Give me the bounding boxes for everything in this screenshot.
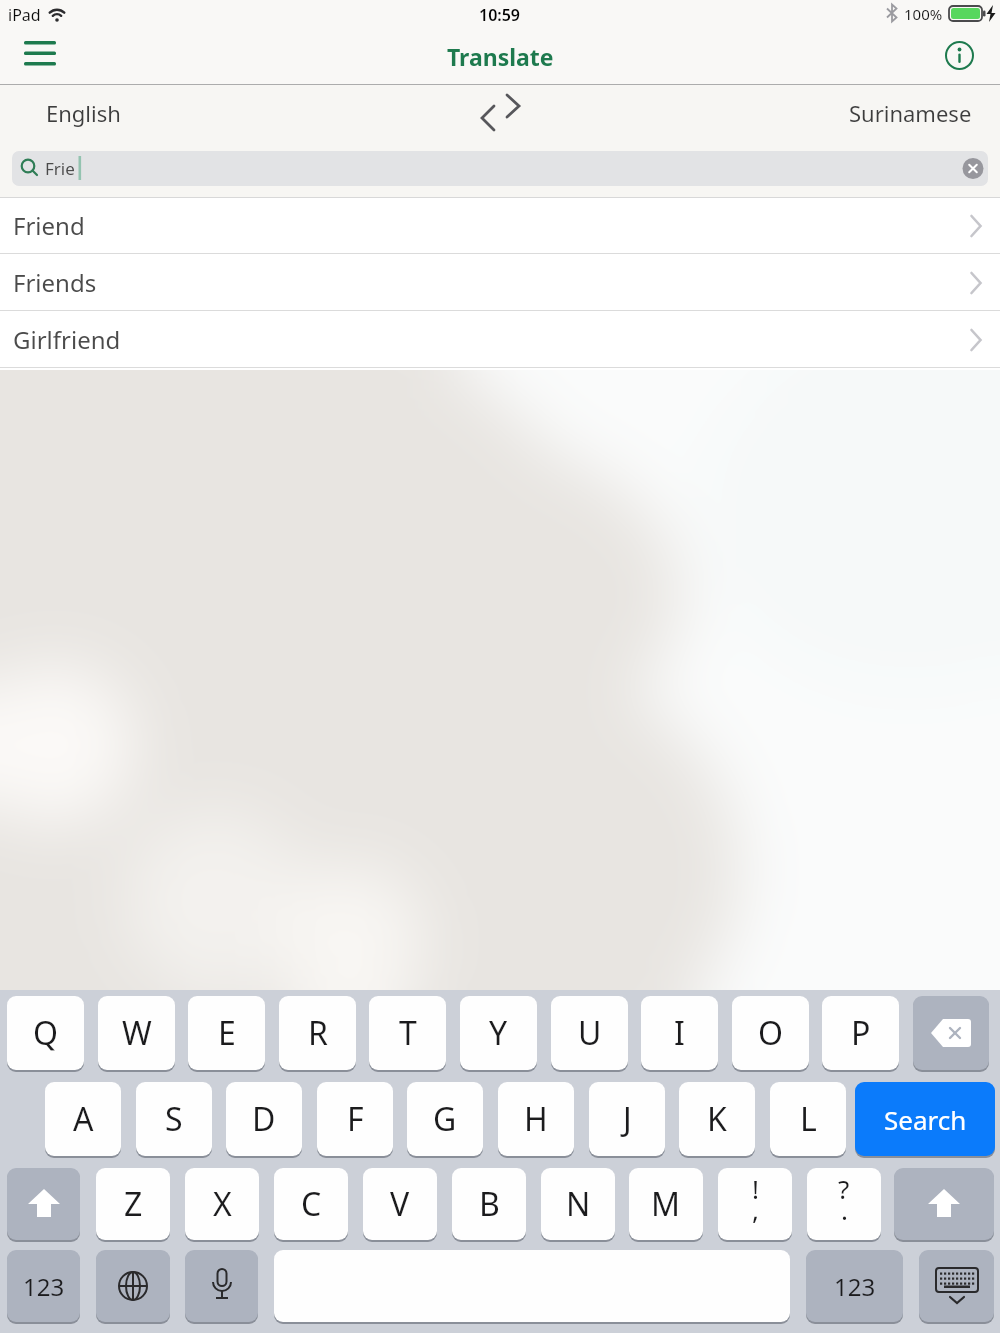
button[interactable] <box>919 1250 994 1324</box>
staticText: ? <box>838 1171 850 1206</box>
staticText: T <box>399 1011 417 1055</box>
staticText: 123 <box>834 1270 876 1303</box>
button[interactable] <box>20 38 60 72</box>
button[interactable] <box>894 1168 994 1242</box>
button[interactable]: V <box>363 1168 437 1242</box>
button[interactable]: 123 <box>806 1250 903 1324</box>
staticText: 10:59 <box>479 4 521 26</box>
staticText: F <box>347 1097 364 1141</box>
staticText: Search <box>884 1102 967 1137</box>
button[interactable]: K <box>679 1082 755 1158</box>
button[interactable]: English <box>0 85 1000 140</box>
staticText: B <box>479 1182 500 1226</box>
staticText: X <box>213 1182 232 1226</box>
staticText: N <box>566 1182 591 1226</box>
button[interactable]: A <box>45 1082 121 1158</box>
button[interactable]: Y <box>460 996 537 1072</box>
button[interactable]: X <box>185 1168 259 1242</box>
staticText: V <box>390 1182 410 1226</box>
staticText: H <box>524 1097 548 1141</box>
staticText: 123 <box>23 1270 65 1303</box>
staticText: O <box>758 1011 783 1055</box>
button[interactable]: W <box>98 996 175 1072</box>
staticText: iPad <box>8 4 41 26</box>
button[interactable] <box>7 1168 80 1242</box>
staticText: A <box>73 1097 94 1141</box>
staticText: Q <box>33 1011 58 1055</box>
staticText: Friends <box>13 266 97 299</box>
button[interactable]: L <box>770 1082 846 1158</box>
button[interactable]: Girlfriend <box>0 311 1000 368</box>
button[interactable]: T <box>369 996 446 1072</box>
staticText: G <box>433 1097 457 1141</box>
staticText: D <box>252 1097 276 1141</box>
staticText: S <box>165 1097 183 1141</box>
button[interactable]: I <box>641 996 718 1072</box>
button[interactable]: U <box>551 996 628 1072</box>
button[interactable]: Z <box>96 1168 170 1242</box>
button[interactable]: P <box>822 996 899 1072</box>
button[interactable]: F <box>317 1082 393 1158</box>
staticText: Y <box>489 1011 508 1055</box>
staticText: ! <box>752 1171 759 1206</box>
staticText: Translate <box>447 41 554 72</box>
staticText: Z <box>124 1182 143 1226</box>
button[interactable]: ! <box>718 1168 792 1242</box>
button[interactable]: Friends <box>0 254 1000 311</box>
staticText: C <box>301 1182 322 1226</box>
staticText: Frie <box>45 157 75 180</box>
staticText: , <box>752 1192 759 1227</box>
button[interactable]: ? <box>807 1168 881 1242</box>
button[interactable] <box>185 1250 258 1324</box>
button[interactable]: 123 <box>7 1250 80 1324</box>
button[interactable] <box>470 88 530 138</box>
button[interactable]: Friend <box>0 197 1000 254</box>
button[interactable]: B <box>452 1168 526 1242</box>
staticText: Surinamese <box>849 98 972 128</box>
staticText: Girlfriend <box>13 323 121 356</box>
staticText: W <box>122 1011 152 1055</box>
button[interactable]: O <box>732 996 809 1072</box>
staticText: I <box>674 1011 685 1055</box>
staticText: . <box>841 1192 848 1227</box>
button[interactable]: H <box>498 1082 574 1158</box>
staticText: L <box>800 1097 817 1141</box>
staticText: Friend <box>13 209 85 242</box>
button[interactable]: D <box>226 1082 302 1158</box>
button[interactable]: M <box>629 1168 703 1242</box>
staticText: U <box>578 1011 602 1055</box>
button[interactable] <box>274 1250 790 1324</box>
staticText: English <box>46 98 121 128</box>
button[interactable]: C <box>274 1168 348 1242</box>
staticText: R <box>308 1011 328 1055</box>
button[interactable]: Search <box>855 1082 995 1158</box>
staticText: J <box>623 1097 632 1141</box>
button[interactable] <box>941 37 978 74</box>
staticText: 100% <box>904 4 943 24</box>
button[interactable]: E <box>188 996 265 1072</box>
staticText: M <box>651 1182 681 1226</box>
staticText: K <box>707 1097 727 1141</box>
button[interactable]: G <box>407 1082 483 1158</box>
button[interactable]: Q <box>7 996 84 1072</box>
button[interactable] <box>913 996 989 1072</box>
button[interactable]: R <box>279 996 356 1072</box>
button[interactable]: J <box>589 1082 665 1158</box>
staticText: E <box>218 1011 236 1055</box>
button[interactable]: S <box>136 1082 212 1158</box>
staticText: P <box>851 1011 871 1055</box>
button[interactable]: Frie <box>12 151 988 186</box>
button[interactable] <box>96 1250 170 1324</box>
button[interactable]: Surinamese <box>849 98 972 128</box>
button[interactable]: N <box>541 1168 615 1242</box>
